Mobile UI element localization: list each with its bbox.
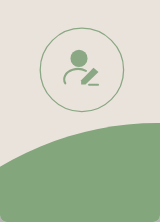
button[interactable]: Edit profile — [0, 0, 160, 222]
